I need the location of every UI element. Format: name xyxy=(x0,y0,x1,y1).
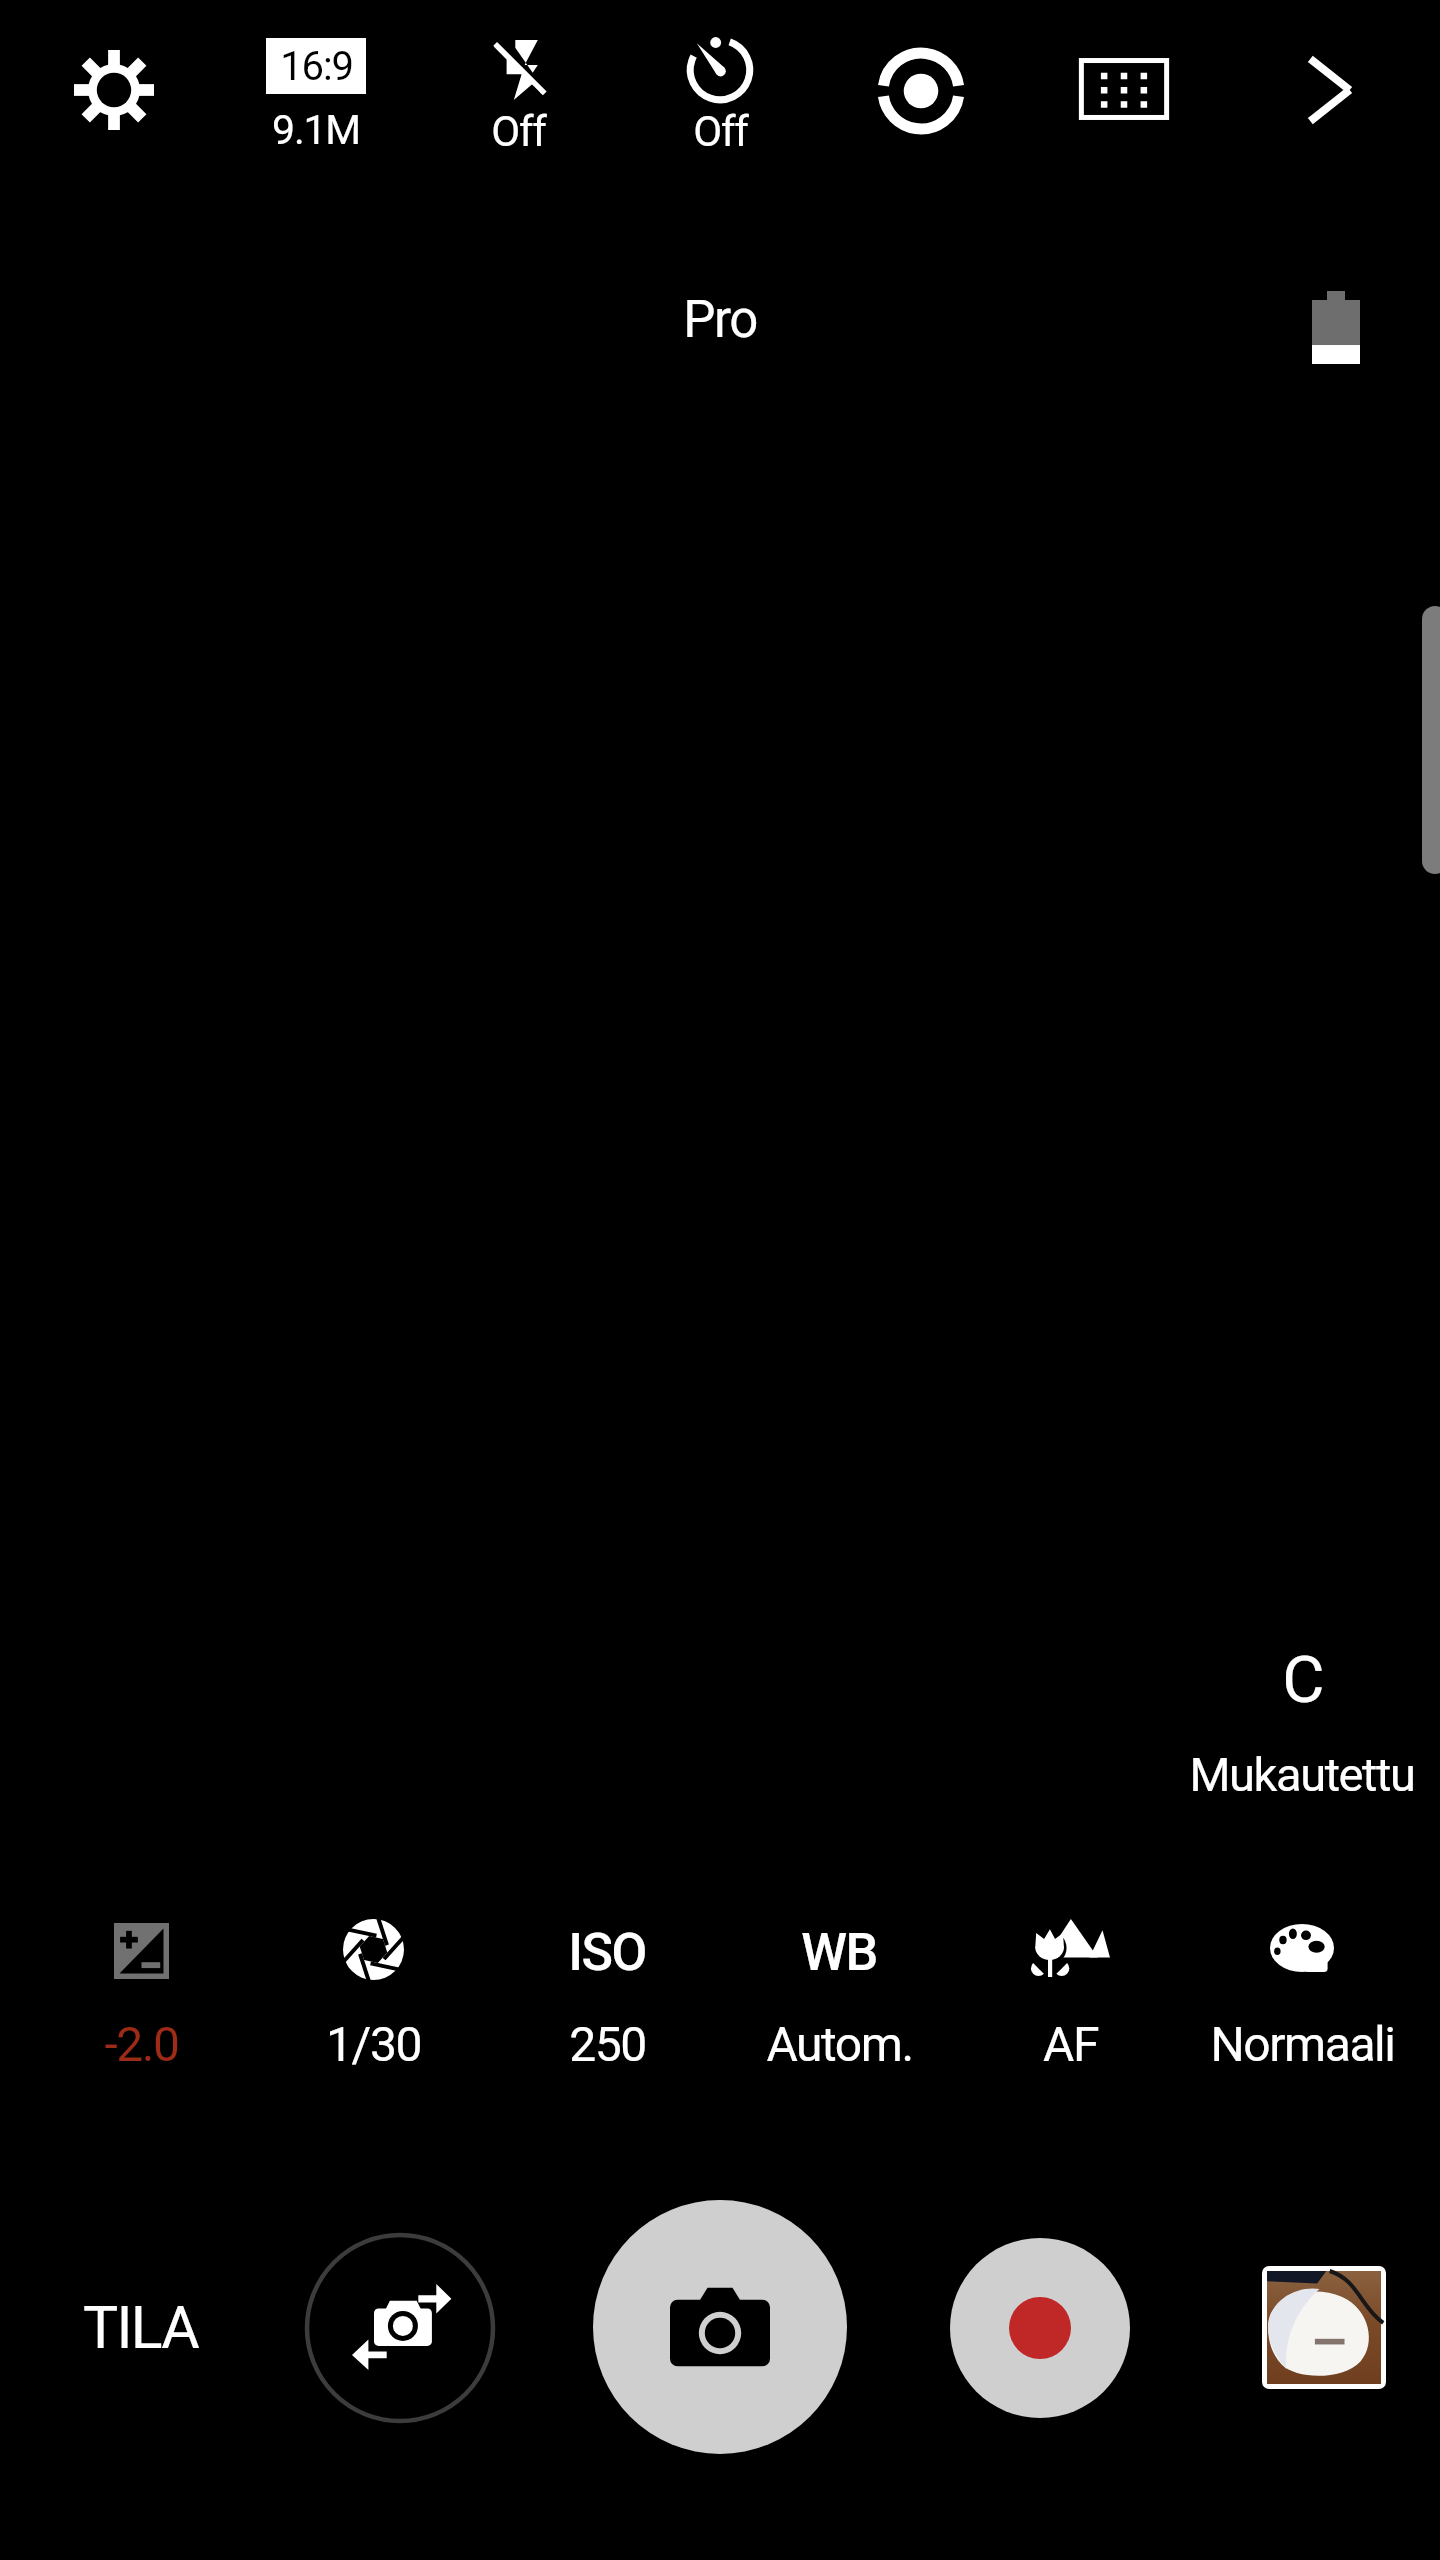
button[interactable]: Gallery xyxy=(1267,2271,1381,2384)
staticText: Autom. xyxy=(766,2016,913,2072)
button[interactable]: Take photo xyxy=(593,2200,847,2454)
button[interactable]: Timer off xyxy=(650,20,790,160)
staticText: ISO xyxy=(568,1922,646,1983)
button[interactable]: Switch camera xyxy=(304,2232,496,2424)
staticText: TILA xyxy=(83,2293,198,2362)
button[interactable]: Metering mode xyxy=(851,21,991,161)
staticText: Off xyxy=(693,107,748,156)
button[interactable]: Flash off xyxy=(448,20,588,160)
button[interactable]: TILA xyxy=(40,2265,240,2389)
staticText: -2.0 xyxy=(104,2016,179,2072)
button[interactable]: White balance xyxy=(724,1900,954,2090)
button[interactable]: Exposure xyxy=(26,1900,256,2090)
staticText: C xyxy=(1282,1642,1323,1718)
staticText: Normaali xyxy=(1210,2016,1395,2072)
button[interactable]: Focus xyxy=(955,1900,1185,2090)
button[interactable]: Record video xyxy=(950,2238,1130,2418)
button[interactable]: Picture size 16:9 9.1M xyxy=(246,20,386,160)
staticText: AF xyxy=(1043,2016,1098,2072)
button[interactable]: Grid lines xyxy=(1054,19,1194,159)
staticText: 250 xyxy=(569,2016,646,2072)
staticText: WB xyxy=(801,1922,877,1983)
staticText: Mukautettu xyxy=(1189,1747,1415,1802)
button[interactable]: C xyxy=(1122,1632,1440,1812)
button[interactable]: Shutter speed xyxy=(258,1900,488,2090)
staticText: Pro xyxy=(683,290,757,350)
staticText: Off xyxy=(491,107,546,156)
staticText: 1/30 xyxy=(326,2016,421,2072)
button[interactable]: Picture tone xyxy=(1187,1900,1417,2090)
button[interactable]: Settings xyxy=(44,20,184,160)
staticText: 9.1M xyxy=(272,106,360,154)
button[interactable]: More xyxy=(1260,20,1400,160)
button[interactable]: ISO xyxy=(492,1900,722,2090)
staticText: 16:9 xyxy=(280,43,353,90)
